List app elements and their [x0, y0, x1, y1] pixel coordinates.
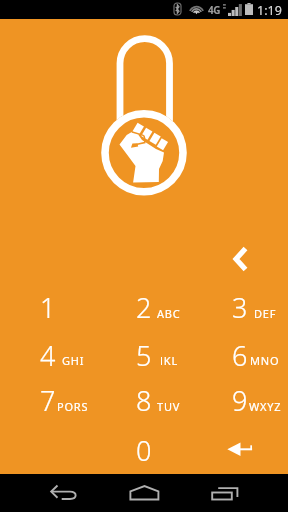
staticText: ABC — [157, 306, 181, 318]
button[interactable]: Recent apps — [205, 483, 245, 503]
staticText: DEF — [254, 306, 277, 318]
staticText: WXYZ — [249, 399, 282, 411]
button[interactable]: Back — [45, 483, 85, 503]
staticText: 9 — [232, 382, 248, 416]
button[interactable]: 3 — [192, 289, 288, 323]
staticText: 0 — [136, 432, 152, 466]
staticText: 1 — [40, 289, 56, 323]
staticText: 7 — [40, 382, 56, 416]
button[interactable]: Home — [126, 483, 166, 503]
staticText: GHI — [62, 353, 85, 365]
staticText: PQRS — [57, 399, 89, 411]
button[interactable]: Backspace — [192, 432, 288, 466]
button[interactable]: 2 — [96, 289, 192, 323]
button[interactable]: 7 — [0, 382, 96, 416]
button[interactable]: 1 — [0, 289, 96, 323]
staticText: 2 — [136, 289, 152, 323]
button[interactable]: 9 — [192, 382, 288, 416]
button[interactable]: 4 — [0, 337, 96, 371]
staticText: 1:19 — [257, 2, 282, 19]
button[interactable]: 0 — [96, 432, 192, 466]
button[interactable]: 6 — [192, 337, 288, 371]
staticText: 3 — [232, 289, 248, 323]
staticText: 4 — [40, 337, 56, 371]
staticText: 8 — [136, 382, 152, 416]
button[interactable]: 8 — [96, 382, 192, 416]
staticText: 5 — [136, 337, 152, 371]
staticText: 4G — [208, 3, 221, 17]
staticText: MNO — [250, 353, 280, 365]
staticText: 6 — [232, 337, 248, 371]
staticText: JKL — [160, 353, 178, 365]
button[interactable]: Hide keypad — [223, 241, 259, 277]
button[interactable]: 5 — [96, 337, 192, 371]
staticText: TUV — [157, 399, 181, 411]
